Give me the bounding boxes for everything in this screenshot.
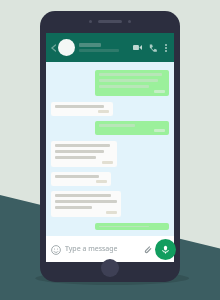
button[interactable]: Camera — [157, 244, 168, 255]
button[interactable]: Voice message — [155, 239, 176, 260]
button[interactable] — [51, 102, 113, 116]
button[interactable]: Emoji — [50, 244, 61, 255]
button[interactable]: Attach — [142, 244, 153, 255]
button[interactable]: Type a message — [65, 244, 142, 254]
button[interactable] — [51, 191, 121, 217]
button[interactable]: More options — [162, 42, 170, 54]
button[interactable] — [95, 70, 169, 96]
button[interactable] — [95, 121, 169, 135]
button[interactable]: Voice call — [147, 42, 158, 53]
button[interactable] — [95, 223, 169, 230]
button[interactable]: Video call — [132, 42, 143, 53]
button[interactable] — [51, 172, 111, 186]
button[interactable]: Home — [101, 259, 119, 277]
staticText: Type a message — [65, 244, 118, 254]
button[interactable]: Back — [49, 43, 58, 52]
button[interactable]: Contact avatar — [58, 39, 75, 56]
button[interactable] — [51, 141, 117, 167]
